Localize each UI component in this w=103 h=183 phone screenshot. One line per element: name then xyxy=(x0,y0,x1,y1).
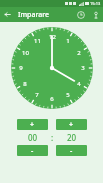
staticText: 5 xyxy=(66,91,70,99)
button[interactable]: + xyxy=(56,119,87,130)
staticText: + xyxy=(69,120,74,130)
staticText: : xyxy=(51,132,54,143)
staticText: 7 xyxy=(35,91,39,99)
staticText: 00 xyxy=(28,132,38,143)
staticText: 20 xyxy=(67,132,77,143)
button[interactable]: Back xyxy=(0,7,15,22)
staticText: 6 xyxy=(50,95,54,103)
staticText: - xyxy=(70,146,73,156)
staticText: 4 xyxy=(77,80,81,88)
staticText: 2 xyxy=(77,49,81,57)
staticText: 8 xyxy=(23,80,27,88)
staticText: Imparare xyxy=(18,10,50,20)
button[interactable]: - xyxy=(56,145,87,156)
staticText: 15:13 xyxy=(90,1,101,6)
staticText: 1 xyxy=(66,37,70,45)
staticText: 3 xyxy=(81,64,85,72)
button[interactable]: + xyxy=(17,119,48,130)
staticText: 11 xyxy=(34,37,41,45)
button[interactable]: Clock xyxy=(73,7,88,22)
staticText: - xyxy=(31,146,34,156)
button[interactable]: More options xyxy=(88,7,103,22)
staticText: 9 xyxy=(19,64,23,72)
staticText: + xyxy=(30,120,35,130)
staticText: 12 xyxy=(49,33,56,41)
staticText: 10 xyxy=(22,49,29,57)
button[interactable]: - xyxy=(17,145,48,156)
